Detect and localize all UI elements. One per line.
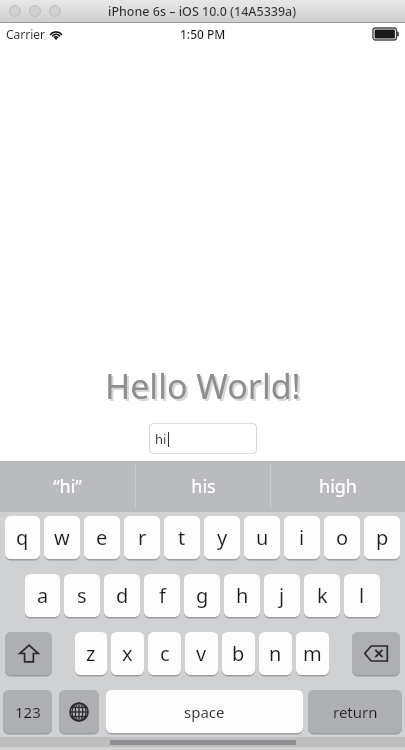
staticText: return: [333, 702, 378, 722]
staticText: k: [317, 582, 328, 609]
staticText: g: [196, 582, 209, 609]
staticText: space: [184, 702, 225, 722]
staticText: j: [279, 582, 285, 609]
staticText: z: [86, 640, 96, 667]
staticText: iPhone 6s – iOS 10.0 (14A5339a): [108, 3, 297, 20]
button[interactable]: his: [136, 461, 270, 512]
staticText: Hello World!: [105, 363, 301, 409]
staticText: c: [160, 640, 170, 667]
button[interactable]: “hi”: [0, 461, 135, 512]
button[interactable]: m: [296, 632, 329, 675]
staticText: o: [336, 524, 349, 551]
button[interactable]: a: [25, 574, 60, 617]
staticText: f: [159, 582, 166, 609]
button[interactable]: j: [264, 574, 300, 617]
button[interactable]: Close: [9, 5, 21, 17]
staticText: u: [256, 524, 269, 551]
button[interactable]: q: [5, 516, 40, 559]
button[interactable]: u: [244, 516, 280, 559]
button[interactable]: h: [224, 574, 260, 617]
button[interactable]: k: [304, 574, 340, 617]
button[interactable]: Zoom: [49, 5, 61, 17]
staticText: n: [269, 640, 282, 667]
staticText: d: [116, 582, 129, 609]
staticText: 123: [15, 702, 41, 722]
staticText: w: [54, 524, 70, 551]
button[interactable]: Next keyboard: [59, 690, 99, 733]
button[interactable]: p: [364, 516, 400, 559]
staticText: “hi”: [53, 474, 82, 499]
staticText: s: [77, 582, 87, 609]
button[interactable]: 123: [3, 690, 52, 733]
staticText: hi: [155, 430, 167, 448]
button[interactable]: l: [344, 574, 380, 617]
button[interactable]: s: [64, 574, 100, 617]
staticText: m: [303, 640, 322, 667]
staticText: y: [217, 524, 228, 551]
button[interactable]: o: [324, 516, 360, 559]
button[interactable]: n: [259, 632, 292, 675]
button[interactable]: return: [308, 690, 402, 733]
staticText: t: [178, 524, 186, 551]
button[interactable]: c: [148, 632, 181, 675]
button[interactable]: Backspace: [352, 632, 400, 675]
button[interactable]: x: [111, 632, 144, 675]
button[interactable]: high: [271, 461, 405, 512]
button[interactable]: g: [184, 574, 220, 617]
button[interactable]: b: [222, 632, 255, 675]
button[interactable]: d: [104, 574, 140, 617]
staticText: l: [359, 582, 365, 609]
button[interactable]: hi: [149, 423, 257, 454]
staticText: a: [37, 582, 49, 609]
staticText: h: [236, 582, 249, 609]
staticText: e: [96, 524, 108, 551]
staticText: v: [196, 640, 207, 667]
button[interactable]: z: [75, 632, 107, 675]
staticText: x: [122, 640, 133, 667]
button[interactable]: i: [284, 516, 320, 559]
button[interactable]: e: [84, 516, 120, 559]
staticText: p: [376, 524, 389, 551]
button[interactable]: w: [44, 516, 80, 559]
staticText: Hello World!: [107, 365, 303, 411]
button[interactable]: f: [144, 574, 180, 617]
button[interactable]: v: [185, 632, 218, 675]
button[interactable]: t: [164, 516, 200, 559]
button[interactable]: r: [124, 516, 160, 559]
staticText: i: [299, 524, 305, 551]
button[interactable]: y: [204, 516, 240, 559]
button[interactable]: Minimize: [29, 5, 41, 17]
staticText: 1:50 PM: [180, 26, 226, 42]
staticText: Carrier: [6, 26, 46, 42]
staticText: high: [319, 474, 357, 499]
staticText: b: [232, 640, 245, 667]
staticText: his: [191, 474, 216, 499]
button[interactable]: space: [106, 690, 303, 733]
staticText: q: [16, 524, 29, 551]
staticText: r: [138, 524, 147, 551]
button[interactable]: Shift: [5, 632, 52, 675]
